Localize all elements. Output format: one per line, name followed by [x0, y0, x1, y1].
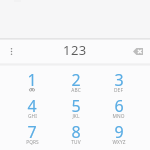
staticText: ABC — [71, 87, 81, 94]
button[interactable]: Backspace — [130, 43, 146, 59]
staticText: 1 — [27, 69, 37, 91]
staticText: DEF — [114, 87, 123, 94]
staticText: 6 — [114, 95, 124, 117]
staticText: WXYZ — [112, 139, 126, 146]
staticText: GHI — [28, 113, 37, 120]
staticText: 4 — [27, 95, 37, 117]
staticText: 9 — [114, 121, 124, 143]
button[interactable]: 7 — [10, 123, 54, 149]
staticText: 2 — [71, 69, 81, 91]
button[interactable]: 3 — [97, 71, 140, 97]
button[interactable]: 2 — [54, 71, 97, 97]
button[interactable]: 1 — [10, 71, 54, 97]
button[interactable]: More options — [4, 44, 19, 59]
button[interactable]: 5 — [54, 97, 97, 123]
button[interactable]: 8 — [54, 123, 97, 149]
staticText: PQRS — [26, 139, 39, 146]
staticText: 5 — [71, 95, 81, 117]
staticText: 3 — [114, 69, 124, 91]
staticText: MNO — [112, 113, 125, 120]
staticText: TUV — [71, 139, 81, 146]
button[interactable]: 6 — [97, 97, 140, 123]
staticText: 7 — [27, 121, 37, 143]
staticText: 123 — [63, 41, 87, 59]
button[interactable]: 9 — [97, 123, 140, 149]
button[interactable]: 4 — [10, 97, 54, 123]
staticText: JKL — [72, 113, 80, 120]
staticText: 8 — [71, 121, 81, 143]
